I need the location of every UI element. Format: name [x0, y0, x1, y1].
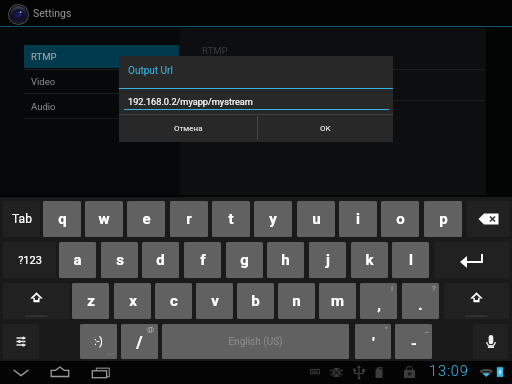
staticText: :-) — [94, 336, 103, 348]
staticText: ? — [432, 284, 436, 293]
staticText: Output Url — [128, 65, 173, 77]
button[interactable]: r — [170, 201, 208, 237]
button[interactable]: a — [59, 242, 96, 278]
staticText: c — [170, 292, 178, 310]
button[interactable]: Audio — [24, 94, 179, 118]
button[interactable]: RTMP — [24, 45, 179, 68]
button[interactable]: :-) — [80, 324, 117, 359]
staticText: g — [240, 251, 249, 269]
staticText: Audio — [31, 101, 56, 112]
staticText: a — [73, 251, 82, 269]
staticText: i — [356, 210, 360, 228]
button[interactable]: s — [101, 242, 138, 278]
button[interactable]: j — [309, 242, 346, 278]
button[interactable]: k — [351, 242, 388, 278]
staticText: o — [396, 210, 405, 228]
button[interactable]: Home — [40, 361, 80, 384]
staticText: ! — [391, 284, 394, 293]
button[interactable]: o — [381, 201, 419, 237]
staticText: m — [331, 292, 344, 310]
button[interactable]: / — [121, 324, 158, 359]
staticText: RTMP — [31, 51, 57, 62]
staticText: e — [142, 210, 151, 228]
button[interactable]: Hide keyboard — [1, 361, 41, 384]
staticText: h — [281, 251, 290, 269]
staticText: 192.168.0.2/myapp/mystream — [128, 96, 253, 107]
button[interactable]: i — [339, 201, 377, 237]
staticText: s — [116, 251, 124, 269]
button[interactable]: v — [196, 283, 233, 319]
staticText: z — [87, 292, 95, 310]
button[interactable]: z — [72, 283, 109, 319]
button[interactable]: ' — [355, 324, 391, 359]
staticText: . — [418, 296, 423, 314]
staticText: English (US) — [228, 336, 283, 348]
button[interactable]: y — [254, 201, 292, 237]
staticText: b — [251, 292, 260, 310]
button[interactable]: Settings — [0, 0, 130, 26]
button[interactable]: Tab — [3, 201, 40, 237]
staticText: p — [439, 210, 448, 228]
button[interactable]: n — [278, 283, 315, 319]
button[interactable]: OK — [258, 115, 393, 142]
button[interactable]: x — [114, 283, 151, 319]
button[interactable]: q — [43, 201, 81, 237]
staticText: ?123 — [18, 254, 42, 267]
staticText: RTMP — [202, 45, 228, 56]
button[interactable]: g — [226, 242, 263, 278]
staticText: l — [409, 251, 413, 269]
staticText: , — [377, 296, 381, 314]
button[interactable]: Shift — [444, 283, 509, 319]
staticText: d — [156, 251, 165, 269]
staticText: f — [200, 251, 206, 269]
button[interactable]: w — [85, 201, 123, 237]
button[interactable]: d — [142, 242, 179, 278]
staticText: ' — [372, 334, 375, 352]
staticText: 13:09 — [429, 363, 469, 380]
staticText: v — [211, 292, 219, 310]
staticText: r — [186, 210, 192, 228]
staticText: w — [98, 210, 110, 228]
button[interactable]: Backspace — [467, 201, 510, 237]
button[interactable]: h — [267, 242, 304, 278]
staticText: t — [228, 210, 234, 228]
staticText: " — [385, 325, 388, 334]
staticText: Settings — [33, 7, 72, 19]
staticText: - — [411, 335, 417, 353]
staticText: u — [312, 210, 321, 228]
button[interactable]: Отмена — [119, 115, 257, 142]
staticText: q — [58, 210, 67, 228]
button[interactable]: Switch input method — [3, 324, 39, 359]
button[interactable]: u — [297, 201, 335, 237]
button[interactable]: l — [392, 242, 429, 278]
staticText: _ — [425, 325, 429, 334]
button[interactable]: Recent apps — [82, 361, 122, 384]
staticText: k — [365, 251, 374, 269]
staticText: Tab — [12, 212, 32, 226]
button[interactable]: English (US) — [162, 324, 349, 359]
button[interactable]: m — [319, 283, 356, 319]
button[interactable]: Voice input — [473, 324, 508, 359]
button[interactable]: b — [237, 283, 274, 319]
button[interactable]: Enter — [434, 242, 510, 278]
button[interactable]: t — [212, 201, 250, 237]
button[interactable]: c — [155, 283, 192, 319]
button[interactable]: - — [395, 324, 432, 359]
button[interactable]: , — [360, 283, 397, 319]
button[interactable]: Video — [24, 69, 179, 93]
staticText: Video — [31, 76, 56, 87]
staticText: OK — [320, 124, 331, 133]
button[interactable]: f — [184, 242, 221, 278]
button[interactable]: ?123 — [3, 242, 56, 278]
staticText: y — [269, 210, 277, 228]
staticText: x — [129, 292, 137, 310]
staticText: j — [326, 251, 330, 269]
staticText: n — [292, 292, 301, 310]
staticText: @ — [147, 325, 155, 334]
button[interactable]: p — [424, 201, 462, 237]
button[interactable]: Shift — [3, 283, 70, 319]
button[interactable]: . — [402, 283, 439, 319]
button[interactable]: e — [127, 201, 165, 237]
staticText: / — [136, 332, 143, 352]
staticText: Отмена — [174, 124, 203, 133]
